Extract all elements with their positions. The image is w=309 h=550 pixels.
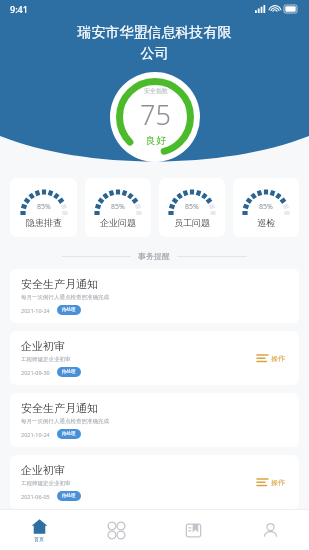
staticText: 操作 [271,354,285,363]
staticText: 2021-10-24 [21,307,50,314]
button[interactable]: 我的 [232,510,309,550]
staticText: 9:41 [10,3,28,15]
staticText: 待处理 [62,431,76,437]
button[interactable]: 85% [159,178,225,237]
staticText: 每月一次例行人通点检查照准确完成 [21,294,109,301]
staticText: 85% [259,202,273,212]
staticText: 安全生产月通知 [21,277,98,291]
staticText: 85% [37,202,51,212]
button[interactable]: 85% [10,178,77,237]
staticText: 85% [185,202,199,212]
staticText: 2021-09-30 [21,369,50,376]
staticText: 瑞安市华盟信息科技有限 公司 [34,24,275,62]
staticText: 隐患排查 [26,217,62,228]
button[interactable]: 安全生产月通知 [10,269,299,323]
staticText: 操作 [271,478,285,487]
staticText: 待处理 [62,307,76,313]
button[interactable]: 85% [233,178,299,237]
button[interactable]: 消息 [155,510,232,550]
staticText: 事务提醒 [138,251,170,261]
button[interactable]: 操作 [254,474,288,491]
staticText: 75 [140,96,171,133]
staticText: 企业初审 [21,339,65,353]
staticText: 企业初审 [21,463,65,477]
button[interactable]: 企业初审 [10,455,299,509]
button[interactable]: 操作 [254,350,288,367]
staticText: 2021-10-24 [21,431,50,438]
staticText: 员工问题 [174,217,210,228]
staticText: 良好 [146,134,166,147]
staticText: 安全生产月通知 [21,401,98,415]
button[interactable]: 安全生产月通知 [10,393,299,447]
button[interactable]: 应用 [78,510,155,550]
staticText: 每月一次例行人通点检查照准确完成 [21,418,109,425]
staticText: 待处理 [62,369,76,375]
staticText: 首页 [34,536,44,542]
staticText: 工程师规定企业初审 [21,356,71,363]
staticText: 企业问题 [100,217,136,228]
button[interactable]: 首页 [0,510,78,550]
staticText: 2021-06-05 [21,493,50,500]
button[interactable]: 85% [85,178,151,237]
staticText: 待处理 [62,493,76,499]
button[interactable]: 企业初审 [10,331,299,385]
staticText: 85% [111,202,125,212]
staticText: 安全指数 [144,87,168,95]
staticText: 工程师规定企业初审 [21,480,71,487]
staticText: 巡检 [257,217,275,228]
